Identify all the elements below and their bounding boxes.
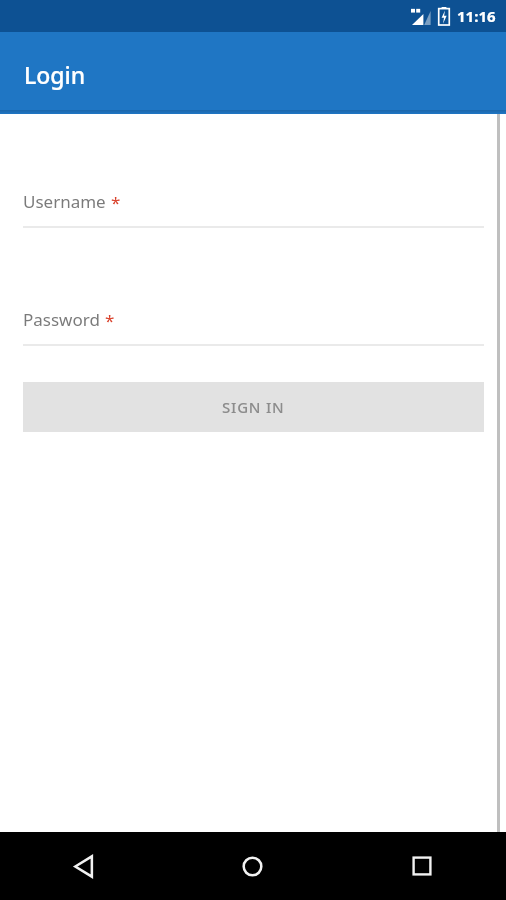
staticText: Password [23, 308, 100, 331]
staticText: * [105, 309, 115, 332]
button[interactable]: Username [23, 190, 484, 228]
button[interactable]: Password [23, 308, 484, 346]
staticText: Username [23, 190, 106, 213]
staticText: Login [24, 59, 86, 90]
staticText: 11:16 [457, 6, 496, 26]
button[interactable]: SIGN IN [23, 382, 484, 432]
button[interactable]: Back [0, 832, 168, 900]
button[interactable]: Recent apps [337, 832, 506, 900]
staticText: * [111, 191, 121, 214]
button[interactable]: Home [168, 832, 337, 900]
staticText: SIGN IN [222, 397, 285, 417]
